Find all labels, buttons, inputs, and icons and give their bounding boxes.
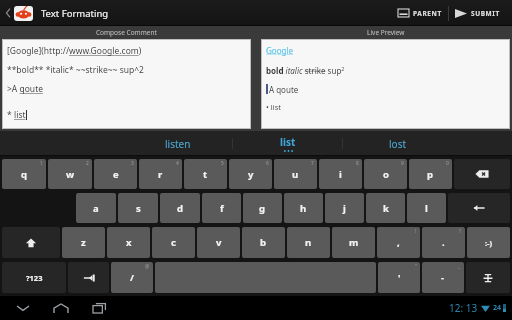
button[interactable]: j xyxy=(325,193,364,223)
button[interactable]: d xyxy=(160,193,200,223)
button[interactable]: list xyxy=(233,131,342,156)
staticText: r xyxy=(158,168,163,181)
staticText: 4 xyxy=(176,160,179,167)
button[interactable]: Hide keyboard xyxy=(10,298,36,318)
staticText: Google xyxy=(266,45,293,56)
button[interactable]: 9 xyxy=(364,159,407,189)
staticText: / xyxy=(130,271,134,284)
staticText: ' xyxy=(398,271,401,284)
staticText: Live Preview xyxy=(367,28,405,37)
staticText: q xyxy=(21,168,28,181)
staticText: 24 xyxy=(493,303,502,313)
button[interactable]: 3 xyxy=(94,159,137,189)
staticText: " xyxy=(415,263,417,270)
button[interactable]: Recent apps xyxy=(86,298,112,318)
button[interactable]: ! xyxy=(377,227,420,258)
staticText: **bold** *italic* ~~strike~~ sup^2 xyxy=(7,64,144,76)
staticText: ?123 xyxy=(26,273,43,283)
button[interactable]: f xyxy=(202,193,241,223)
button[interactable]: Shift xyxy=(2,227,60,258)
staticText: s xyxy=(136,202,141,215)
button[interactable]: Backspace xyxy=(454,159,510,189)
button[interactable]: s xyxy=(118,193,158,223)
staticText: • list xyxy=(266,102,281,112)
staticText: o xyxy=(383,168,389,181)
staticText: lost xyxy=(389,137,407,151)
button[interactable]: 5 xyxy=(184,159,227,189)
staticText: PARENT xyxy=(413,9,442,18)
staticText: k xyxy=(383,202,389,215)
staticText: c xyxy=(171,236,176,249)
button[interactable]: Change language xyxy=(466,262,510,293)
staticText: list xyxy=(280,135,296,149)
button[interactable]: m xyxy=(332,227,375,258)
staticText: u xyxy=(292,168,299,181)
staticText: . xyxy=(442,236,445,249)
button[interactable]: " xyxy=(378,262,420,293)
staticText: 6 xyxy=(266,160,269,167)
staticText: f xyxy=(220,202,224,215)
staticText: _ xyxy=(458,263,461,270)
staticText: bold italic strike sup2 xyxy=(266,65,345,76)
staticText: - xyxy=(441,271,445,284)
staticText: n xyxy=(305,236,312,249)
button[interactable]: [Google](http://www.Google.com) xyxy=(2,39,251,129)
button[interactable]: 0 xyxy=(409,159,452,189)
button[interactable]: x xyxy=(107,227,150,258)
staticText: Text Formating xyxy=(41,7,109,20)
staticText: 2 xyxy=(86,160,89,167)
button[interactable]: ? xyxy=(422,227,465,258)
button[interactable]: 4 xyxy=(139,159,182,189)
staticText: >A qoute xyxy=(7,83,43,95)
staticText: 5 xyxy=(221,160,224,167)
button[interactable]: h xyxy=(284,193,323,223)
button[interactable]: k xyxy=(366,193,405,223)
button[interactable]: PARENT xyxy=(398,0,442,26)
button[interactable]: 8 xyxy=(319,159,362,189)
staticText: 3 xyxy=(131,160,134,167)
button[interactable]: b xyxy=(242,227,285,258)
button[interactable]: 2 xyxy=(48,159,92,189)
staticText: [Google](http://www.Google.com) xyxy=(7,45,142,57)
button[interactable]: c xyxy=(152,227,195,258)
button[interactable]: Tab xyxy=(68,262,109,293)
staticText: 7 xyxy=(311,160,314,167)
staticText: l xyxy=(425,202,428,215)
button[interactable]: :-) xyxy=(467,227,510,258)
button[interactable]: @ xyxy=(111,262,153,293)
button[interactable]: Up xyxy=(4,6,12,20)
button[interactable]: Enter xyxy=(448,193,510,223)
button[interactable]: Google xyxy=(261,39,510,129)
button[interactable]: n xyxy=(287,227,330,258)
button[interactable]: _ xyxy=(422,262,464,293)
staticText: A qoute xyxy=(269,84,299,95)
staticText: , xyxy=(397,236,400,249)
button[interactable]: 1 xyxy=(2,159,46,189)
staticText: listen xyxy=(165,137,191,151)
staticText: h xyxy=(300,202,307,215)
button[interactable]: g xyxy=(243,193,282,223)
button[interactable]: Home xyxy=(48,298,74,318)
staticText: 0 xyxy=(446,160,449,167)
button[interactable]: a xyxy=(76,193,116,223)
staticText: p xyxy=(427,168,434,181)
button[interactable]: 6 xyxy=(229,159,272,189)
button[interactable]: listen xyxy=(124,131,232,156)
staticText: i xyxy=(339,168,342,181)
button[interactable]: ?123 xyxy=(2,262,66,293)
staticText: t xyxy=(203,168,208,181)
button[interactable]: l xyxy=(407,193,446,223)
staticText: 12: 13 xyxy=(449,301,478,315)
staticText: a xyxy=(93,202,99,215)
staticText: m xyxy=(349,236,359,249)
button[interactable]: 7 xyxy=(274,159,317,189)
button[interactable]: SUBMIT xyxy=(455,0,500,26)
staticText: y xyxy=(248,168,254,181)
button[interactable] xyxy=(14,6,33,21)
button[interactable]: lost xyxy=(343,131,452,156)
staticText: x xyxy=(126,236,132,249)
button[interactable]: z xyxy=(62,227,105,258)
staticText: ! xyxy=(415,228,417,235)
button[interactable]: v xyxy=(197,227,240,258)
